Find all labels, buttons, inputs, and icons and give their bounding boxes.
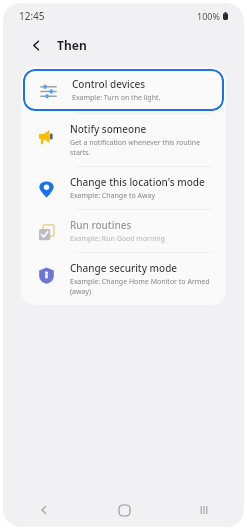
staticText: Example: Run Good morning (70, 234, 165, 244)
staticText: Run routines (70, 218, 132, 232)
staticText: Get a notification whenever this routine… (70, 138, 214, 158)
staticText: 100% (197, 10, 220, 22)
button[interactable]: Back (3, 493, 84, 527)
button[interactable]: Notify someone (21, 114, 226, 166)
staticText: Change security mode (70, 261, 178, 275)
staticText: Then (57, 37, 87, 53)
button[interactable]: Change security mode (21, 253, 226, 305)
button[interactable]: Change this location's mode (21, 167, 226, 209)
button[interactable]: Home (84, 493, 164, 527)
staticText: 12:45 (19, 9, 45, 23)
staticText: Control devices (72, 77, 146, 91)
button[interactable]: Recents (164, 493, 244, 527)
staticText: Notify someone (70, 122, 147, 136)
button[interactable]: Run routines (21, 210, 226, 252)
staticText: Example: Turn on the light. (72, 93, 161, 103)
staticText: Change this location's mode (70, 175, 205, 189)
button[interactable]: Back (25, 34, 47, 56)
staticText: Example: Change to Away (70, 191, 155, 201)
button[interactable]: Control devices (23, 69, 224, 111)
staticText: Example: Change Home Monitor to Armed (a… (70, 277, 214, 297)
